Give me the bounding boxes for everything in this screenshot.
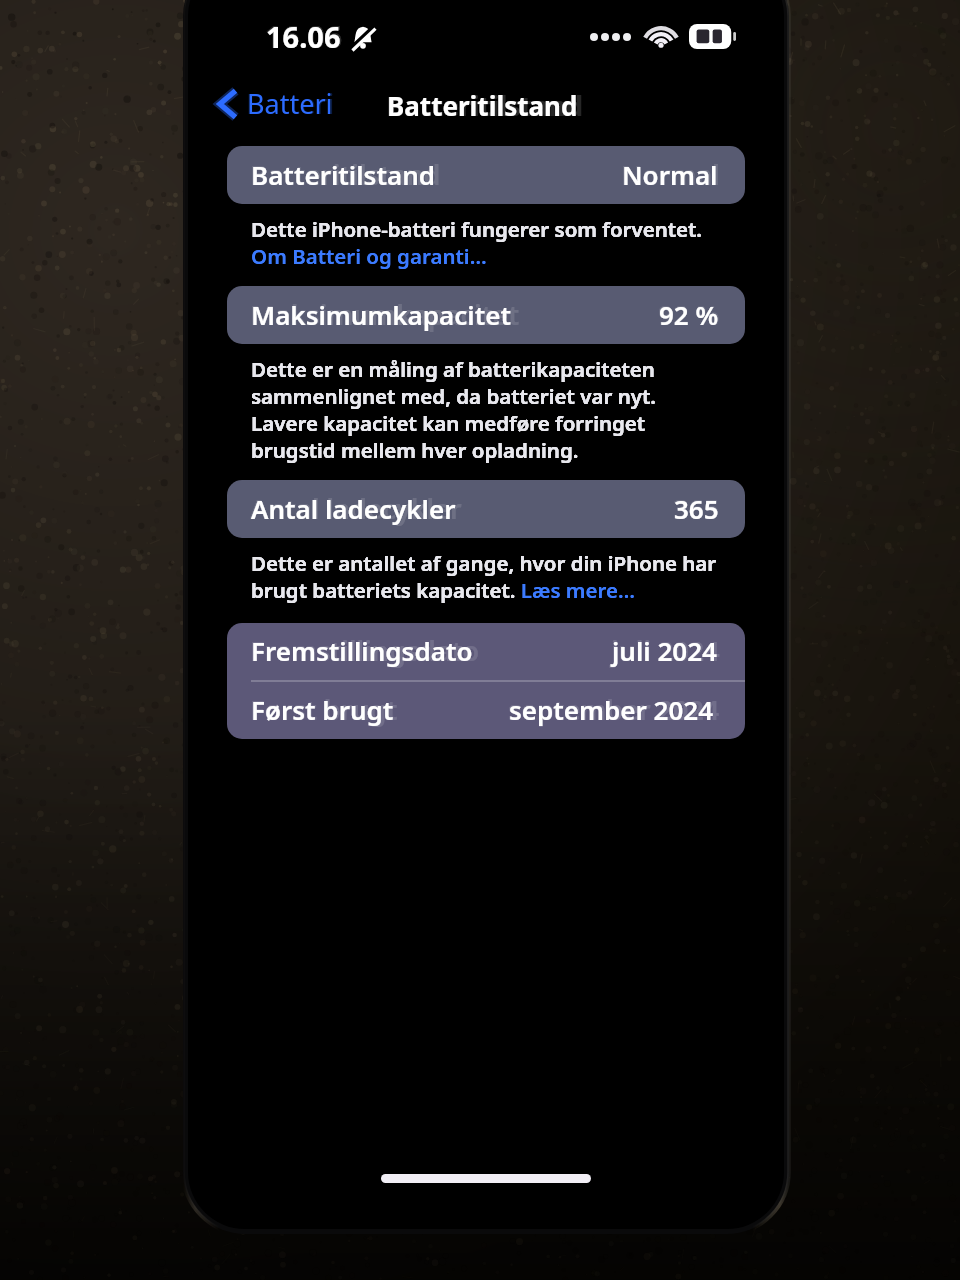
button[interactable]: Fremstillingsdato (227, 623, 745, 680)
staticText: Dette iPhone-batteri fungerer som forven… (251, 215, 719, 270)
staticText: Først brugt (251, 692, 394, 727)
staticText: september 2024 (509, 692, 714, 727)
staticText: 92 % (658, 296, 720, 333)
button[interactable]: Back (212, 79, 342, 129)
staticText: Batteritilstand (386, 87, 584, 124)
staticText: Fremstillingsdato (250, 632, 480, 669)
staticText: Først brugt (250, 691, 398, 728)
staticText: Dette iPhone-batteri fungerer som forven… (251, 215, 719, 270)
staticText: Batteritilstand (251, 157, 436, 192)
staticText: 365 (673, 490, 720, 527)
staticText: Maksimumkapacitet (251, 297, 512, 332)
staticText: juli 2024 (612, 633, 717, 668)
button[interactable]: Maksimumkapacitet (227, 286, 745, 344)
staticText: 365 (674, 491, 719, 526)
staticText: Fremstillingsdato (251, 633, 473, 668)
staticText: Batteri (246, 84, 335, 122)
staticText: 92 % (659, 297, 719, 332)
staticText: Dette er antallet af gange, hvor din iPh… (251, 549, 719, 604)
staticText: Normal (621, 156, 720, 193)
staticText: 16.06 (265, 16, 343, 57)
staticText: Normal (622, 157, 718, 192)
other: Wi-Fi (646, 26, 676, 48)
staticText: 16.06 (266, 17, 341, 56)
staticText: juli 2024 (611, 632, 720, 669)
other: Cellular signal (589, 31, 633, 43)
staticText: Dette er en måling af batterikapaciteten… (251, 355, 719, 464)
other: Battery 87 percent (689, 24, 737, 49)
staticText: Antal ladecykler (251, 491, 456, 526)
staticText: Maksimumkapacitet (250, 296, 520, 333)
other: Back (218, 89, 237, 119)
button[interactable]: Antal ladecykler (227, 480, 745, 538)
staticText: Batteri (247, 85, 333, 122)
button[interactable]: Batteritilstand (227, 146, 745, 204)
staticText: Dette er en måling af batterikapaciteten… (251, 355, 719, 464)
staticText: september 2024 (508, 691, 720, 728)
staticText: Antal ladecykler (250, 490, 462, 527)
staticText: Batteritilstand (387, 88, 578, 123)
staticText: Dette er antallet af gange, hvor din iPh… (251, 549, 719, 604)
button[interactable]: Først brugt (227, 682, 745, 739)
staticText: Batteritilstand (250, 156, 441, 193)
other: Silent mode (351, 25, 375, 51)
